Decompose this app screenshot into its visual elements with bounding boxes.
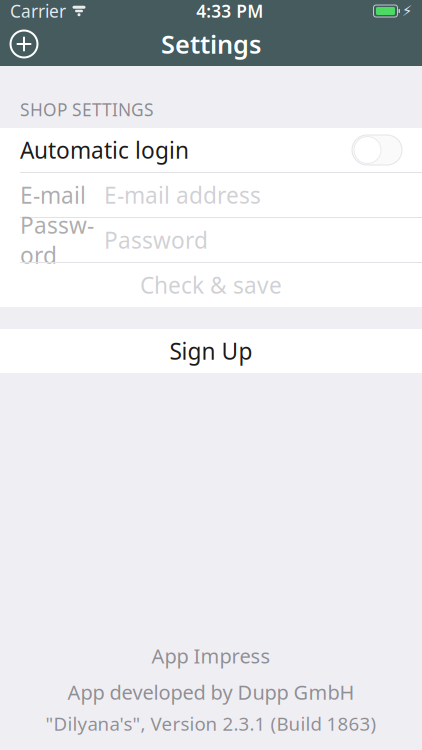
staticText: E-mail address bbox=[104, 180, 261, 210]
button[interactable]: App Impress bbox=[0, 643, 422, 669]
staticText: Password bbox=[20, 210, 94, 270]
staticText: Check & save bbox=[140, 270, 282, 300]
staticText: ⚡︎ bbox=[402, 3, 412, 19]
button[interactable]: E-mail bbox=[0, 173, 422, 217]
button[interactable]: Sign Up bbox=[0, 329, 422, 373]
staticText: Automatic login bbox=[20, 135, 189, 165]
button[interactable]: Check & save bbox=[0, 263, 422, 307]
staticText: Sign Up bbox=[169, 336, 252, 366]
staticText: E-mail bbox=[20, 180, 86, 210]
staticText: 4:33 PM bbox=[196, 0, 263, 22]
staticText: SHOP SETTINGS bbox=[20, 98, 154, 121]
staticText: "Dilyana's", Version 2.3.1 (Build 1863) bbox=[45, 711, 376, 736]
staticText: App Impress bbox=[151, 642, 270, 669]
staticText: Settings bbox=[161, 27, 261, 61]
staticText: App developed by Dupp GmbH bbox=[67, 679, 354, 705]
staticText: Carrier bbox=[10, 0, 66, 22]
button[interactable]: Password bbox=[0, 218, 422, 262]
button[interactable]: Automatic login toggle bbox=[352, 135, 402, 165]
staticText: Password bbox=[104, 225, 208, 255]
button[interactable]: Add bbox=[0, 22, 48, 66]
